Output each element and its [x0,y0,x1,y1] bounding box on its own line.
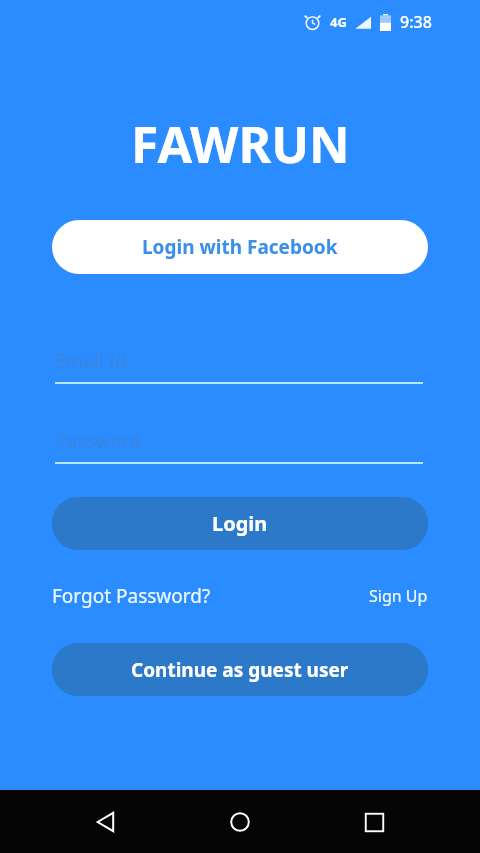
staticText: FAWRUN [131,110,350,178]
button[interactable]: Login [52,497,428,550]
staticText: 9:38 [400,11,432,33]
staticText: Continue as guest user [131,657,349,683]
button[interactable]: Home [212,794,268,850]
button[interactable]: Back [78,794,134,850]
button[interactable]: Sign Up [369,585,428,607]
staticText: 4G [330,13,347,31]
staticText: Login with Facebook [142,234,338,260]
button[interactable]: Continue as guest user [52,643,428,696]
button[interactable]: Login with Facebook [52,220,428,274]
staticText: Password [55,428,141,454]
staticText: Login [212,510,268,537]
button[interactable]: Recent apps [346,794,402,850]
staticText: Sign Up [369,585,428,607]
button[interactable]: Forgot Password? [52,583,211,609]
staticText: Forgot Password? [52,583,211,609]
staticText: Email Id [55,348,127,374]
